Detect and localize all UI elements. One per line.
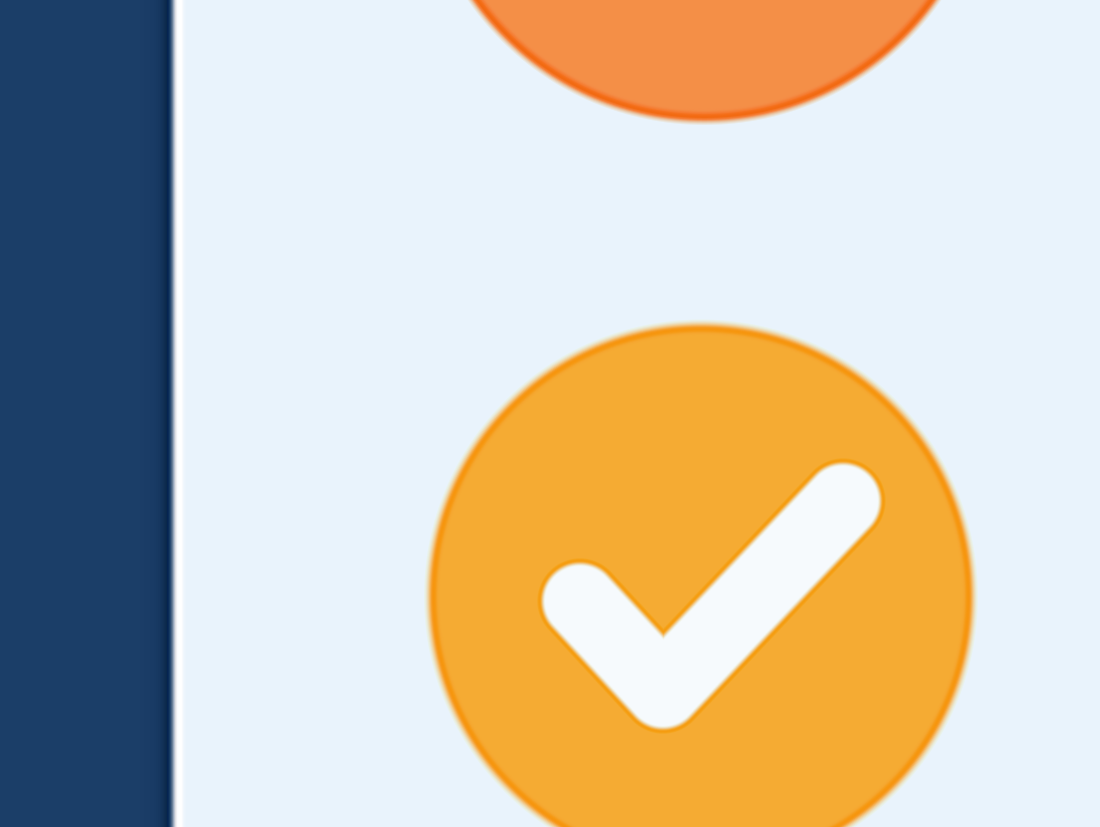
button[interactable]: Task completed xyxy=(0,0,1100,827)
button[interactable]: Mark task complete xyxy=(0,0,1100,827)
